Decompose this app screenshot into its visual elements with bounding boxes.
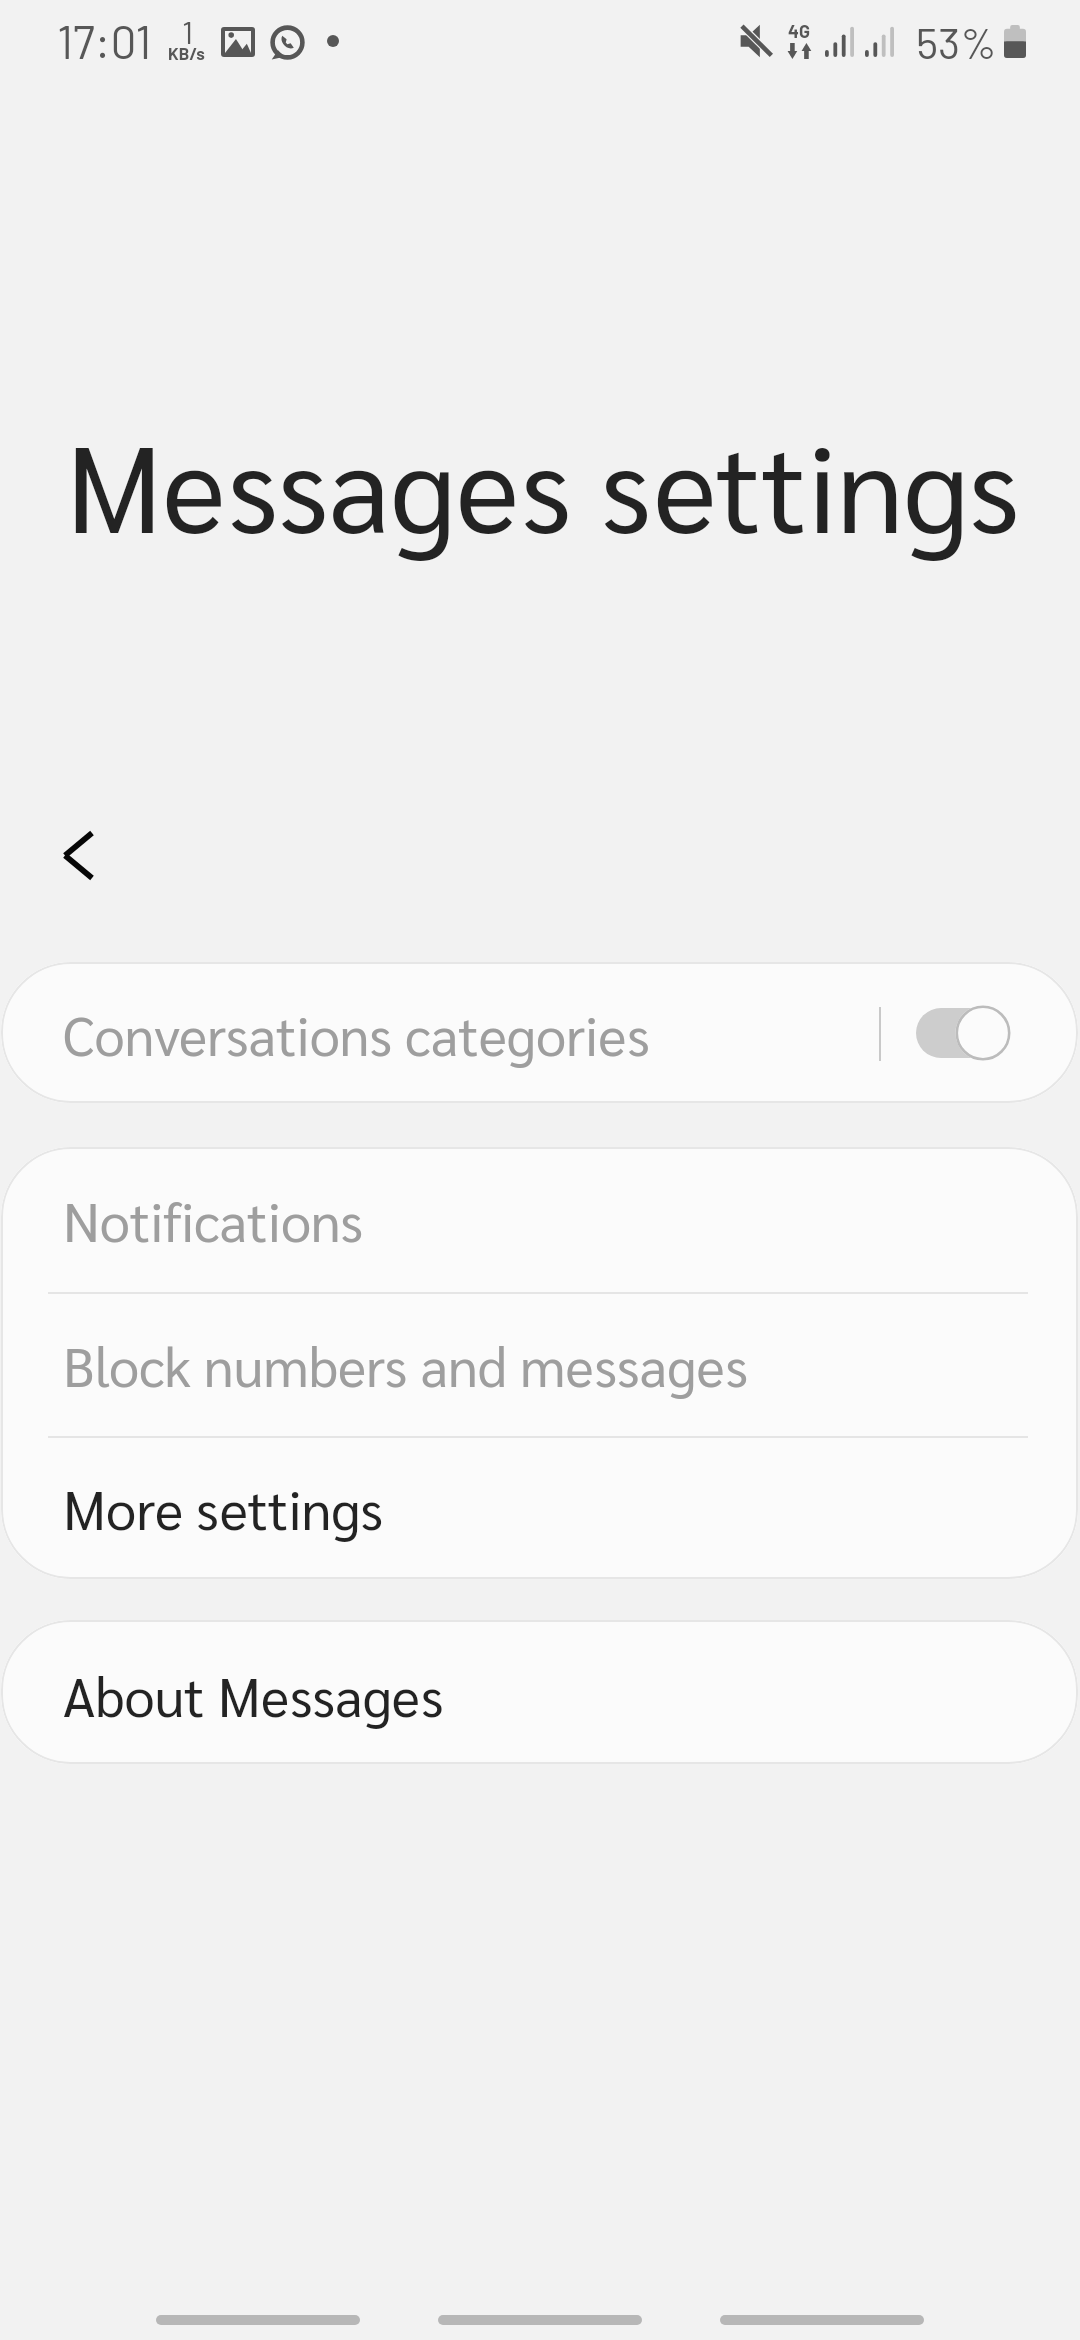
staticText: KB/s: [168, 43, 205, 63]
button[interactable]: Block numbers and messages: [1, 1293, 1078, 1437]
staticText: Notifications: [63, 1184, 364, 1254]
button[interactable]: Conversations categories: [909, 1002, 1013, 1064]
staticText: 53%: [916, 16, 997, 68]
staticText: About Messages: [63, 1659, 444, 1729]
button[interactable]: Conversations categories: [1, 962, 1078, 1103]
button[interactable]: Recent apps: [156, 2315, 360, 2325]
staticText: Conversations categories: [63, 998, 650, 1068]
staticText: 1: [182, 12, 194, 50]
button[interactable]: About Messages: [1, 1620, 1078, 1764]
button[interactable]: Back: [720, 2315, 924, 2325]
button[interactable]: Navigate up: [22, 799, 134, 911]
button[interactable]: More settings: [1, 1437, 1078, 1579]
staticText: Block numbers and messages: [63, 1329, 748, 1399]
staticText: 4G: [788, 20, 810, 42]
staticText: 17:01: [57, 13, 152, 68]
button[interactable]: Home: [438, 2315, 642, 2325]
staticText: More settings: [63, 1472, 383, 1542]
button[interactable]: Notifications: [1, 1147, 1078, 1293]
staticText: Messages settings: [66, 404, 1020, 561]
